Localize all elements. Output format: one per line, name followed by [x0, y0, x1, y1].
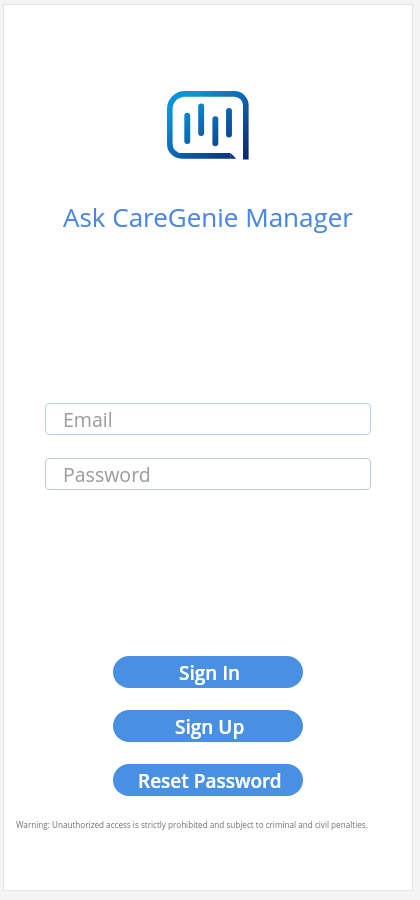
staticText: Ask CareGenie Manager [63, 199, 353, 234]
other: Ask CareGenie logo [165, 91, 249, 160]
staticText: Password [63, 461, 151, 488]
button[interactable]: Sign Up [113, 710, 303, 742]
staticText: Sign In [179, 660, 241, 686]
button[interactable]: Sign In [113, 656, 303, 688]
staticText: Email [63, 406, 113, 433]
button[interactable]: Email [45, 403, 371, 435]
staticText: Warning: Unauthorized access is strictly… [16, 819, 368, 830]
staticText: Sign Up [175, 714, 245, 740]
staticText: Reset Password [138, 768, 282, 794]
button[interactable]: Reset Password [113, 764, 303, 796]
button[interactable]: Password [45, 458, 371, 490]
